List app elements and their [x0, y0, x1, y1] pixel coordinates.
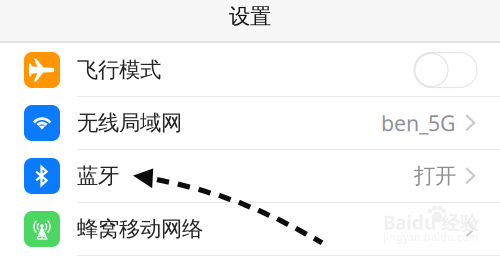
button[interactable]: 蓝牙 [0, 150, 500, 202]
staticText: 设置 [229, 3, 271, 30]
staticText: 蓝牙 [77, 163, 119, 189]
staticText: 打开 [414, 163, 456, 189]
button[interactable]: 蜂窝移动网络 [0, 203, 500, 255]
button[interactable]: 飞行模式 [0, 44, 500, 96]
staticText: jingyan.baidu.com [383, 230, 478, 244]
staticText: 蜂窝移动网络 [77, 216, 203, 242]
staticText: 飞行模式 [77, 57, 161, 83]
staticText: ben_5G [381, 109, 456, 137]
button[interactable]: 无线局域网 [0, 97, 500, 149]
staticText: Baidu 经验 [383, 210, 479, 235]
staticText: 无线局域网 [77, 110, 182, 136]
button[interactable]: 飞行模式开关 [414, 52, 477, 87]
